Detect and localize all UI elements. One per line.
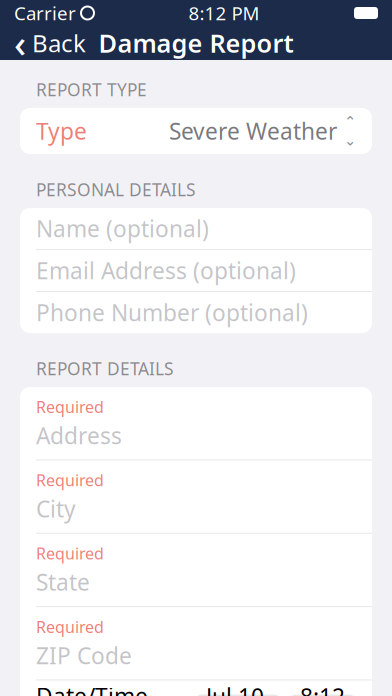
staticText: 8:12 PM bbox=[188, 1, 259, 25]
button[interactable]: Type bbox=[20, 108, 372, 154]
staticText: PERSONAL DETAILS bbox=[36, 178, 196, 201]
staticText: State bbox=[36, 567, 90, 597]
staticText: Severe Weather bbox=[169, 116, 337, 146]
staticText: Type bbox=[36, 116, 87, 146]
staticText: Date/Time bbox=[36, 681, 148, 696]
button[interactable]: Jul 10, 2024 bbox=[195, 694, 281, 696]
staticText: Email Address (optional) bbox=[36, 255, 296, 286]
staticText: 8:12 PM bbox=[300, 681, 345, 696]
staticText: Jul 10, 2024 bbox=[206, 681, 270, 696]
staticText: City bbox=[36, 494, 76, 524]
staticText: Damage Report bbox=[98, 26, 293, 60]
staticText: Required bbox=[36, 616, 104, 637]
staticText: ZIP Code bbox=[36, 640, 132, 670]
button[interactable]: Required bbox=[20, 607, 372, 679]
button[interactable]: 8:12 PM bbox=[289, 694, 356, 696]
staticText: Name (optional) bbox=[36, 213, 209, 244]
button[interactable]: Required bbox=[20, 460, 372, 533]
staticText: REPORT TYPE bbox=[36, 78, 147, 101]
button[interactable]: Email Address (optional) bbox=[20, 250, 372, 291]
staticText: Required bbox=[36, 396, 104, 417]
staticText: Address bbox=[36, 420, 122, 450]
staticText: REPORT DETAILS bbox=[36, 357, 174, 380]
staticText: Back bbox=[32, 27, 86, 59]
staticText: Carrier bbox=[14, 1, 76, 25]
button[interactable]: Name (optional) bbox=[20, 208, 372, 249]
staticText: Phone Number (optional) bbox=[36, 297, 308, 328]
staticText: ‹ bbox=[14, 18, 26, 68]
staticText: ⌃ bbox=[344, 113, 356, 130]
button[interactable]: Required bbox=[20, 534, 372, 606]
button[interactable]: Required bbox=[20, 387, 372, 459]
staticText: ⌄ bbox=[344, 132, 356, 149]
button[interactable]: ‹ bbox=[0, 26, 100, 60]
staticText: Required bbox=[36, 543, 104, 564]
staticText: Required bbox=[36, 469, 104, 491]
button[interactable]: Phone Number (optional) bbox=[20, 292, 372, 333]
